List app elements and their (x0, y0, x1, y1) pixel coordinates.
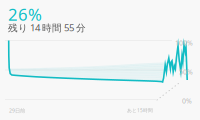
staticText: 0% (182, 96, 192, 105)
staticText: 残り 14 時間 55 分 (8, 21, 86, 34)
staticText: 29日前 (9, 107, 25, 114)
staticText: 50% (179, 67, 193, 76)
staticText: 100% (175, 38, 193, 47)
staticText: 26% (8, 3, 42, 26)
staticText: あと15時間 (127, 107, 153, 113)
